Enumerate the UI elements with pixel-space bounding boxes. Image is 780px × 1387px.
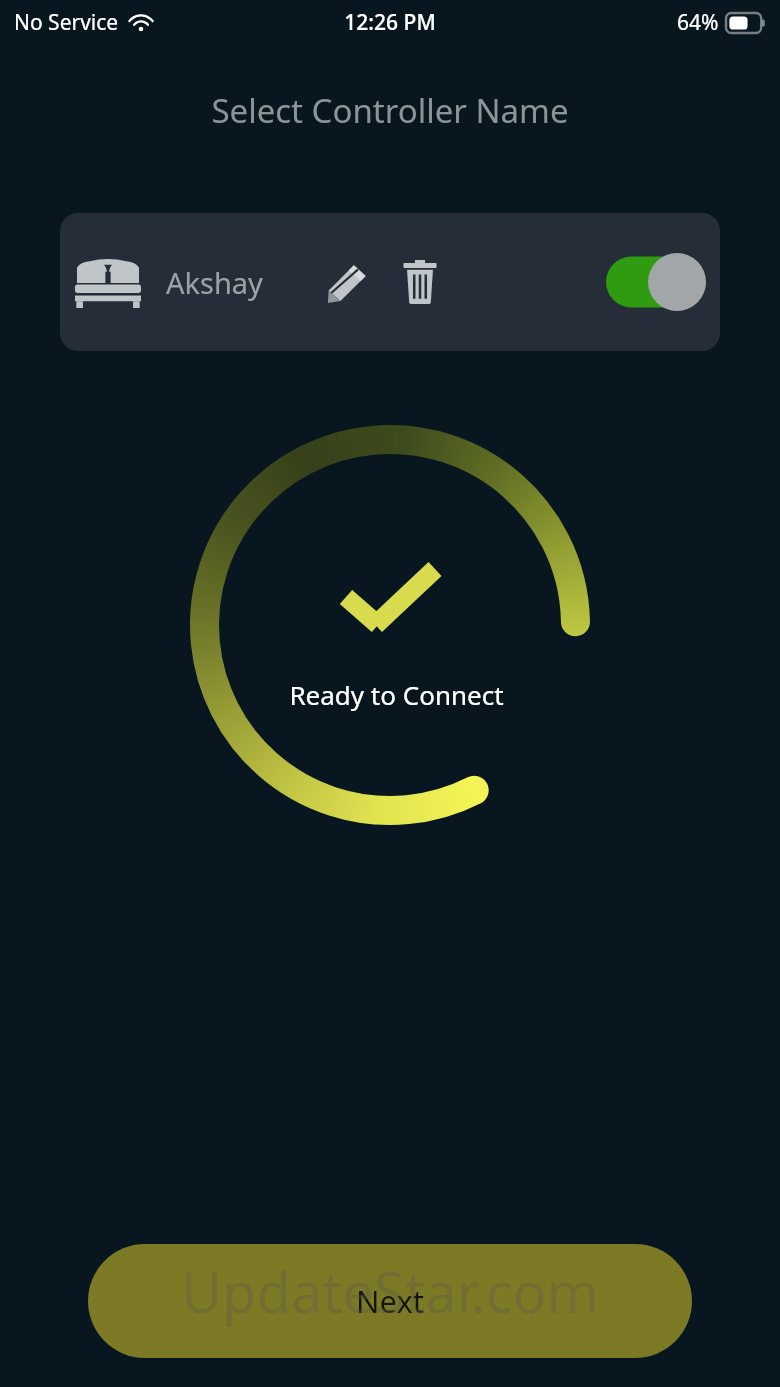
staticText: Select Controller Name [0, 88, 780, 133]
staticText: No Service [14, 8, 119, 37]
staticText: 64% [677, 8, 719, 37]
staticText: UpdateStar.com [0, 1253, 780, 1329]
button[interactable]: Next [88, 1244, 692, 1358]
staticText: Next [356, 1280, 425, 1322]
staticText: 12:26 PM [344, 8, 436, 37]
button[interactable]: Delete [390, 252, 450, 312]
button[interactable]: Edit [318, 252, 378, 312]
staticText: Ready to Connect [289, 677, 504, 712]
staticText: Akshay [166, 263, 263, 302]
button[interactable]: Akshay [60, 213, 720, 351]
button[interactable]: Enabled [606, 253, 706, 311]
